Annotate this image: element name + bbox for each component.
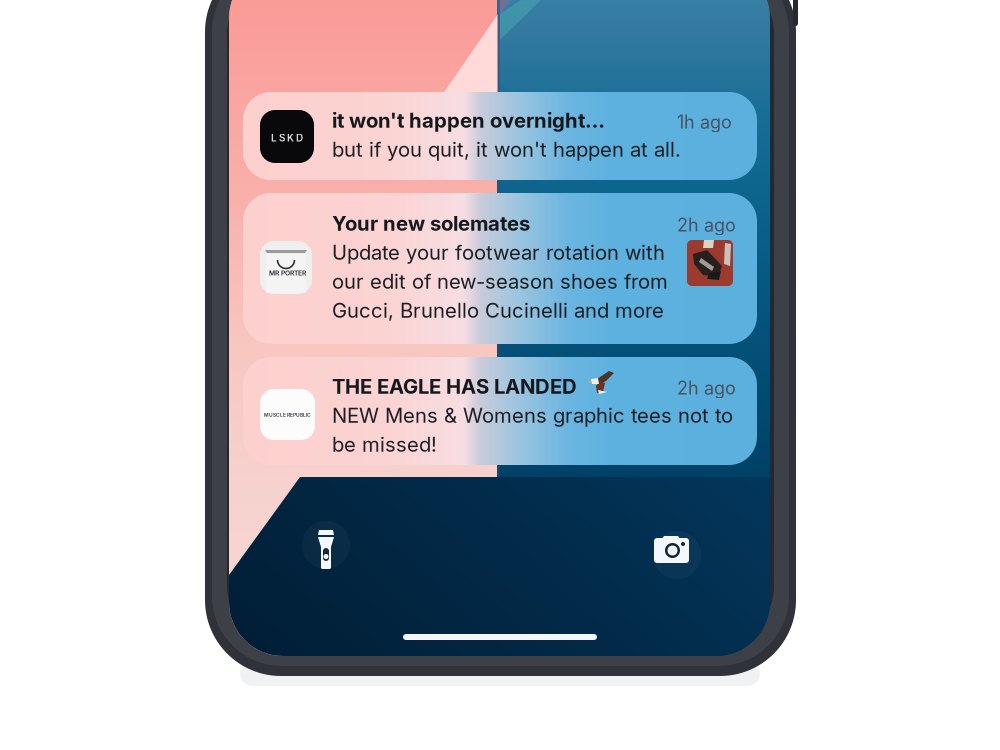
staticText: 2h ago (677, 377, 736, 399)
staticText: 1h ago (677, 111, 732, 133)
staticText: it won't happen overnight… (332, 108, 605, 132)
button[interactable]: MR PORTER (243, 193, 757, 344)
button[interactable]: Camera (653, 531, 701, 579)
staticText: NEW Mens & Womens graphic tees not to (332, 403, 733, 427)
staticText: THE EAGLE HAS LANDED (332, 374, 577, 398)
staticText: MUSCLE REPUBLIC (264, 412, 311, 418)
button[interactable]: L S K D (243, 92, 757, 180)
staticText: be missed! (332, 432, 437, 456)
button[interactable]: MUSCLE REPUBLIC (243, 357, 757, 465)
staticText: Gucci, Brunello Cucinelli and more (332, 298, 664, 322)
staticText: Update your footwear rotation with (332, 240, 665, 264)
staticText: our edit of new-season shoes from (332, 269, 668, 293)
staticText: 2h ago (677, 214, 736, 236)
staticText: MR PORTER (269, 269, 306, 277)
staticText: Your new solemates (332, 211, 530, 235)
staticText: L S K D (271, 132, 303, 144)
staticText: but if you quit, it won't happen at all. (332, 137, 681, 161)
button[interactable]: Flashlight (302, 521, 350, 569)
